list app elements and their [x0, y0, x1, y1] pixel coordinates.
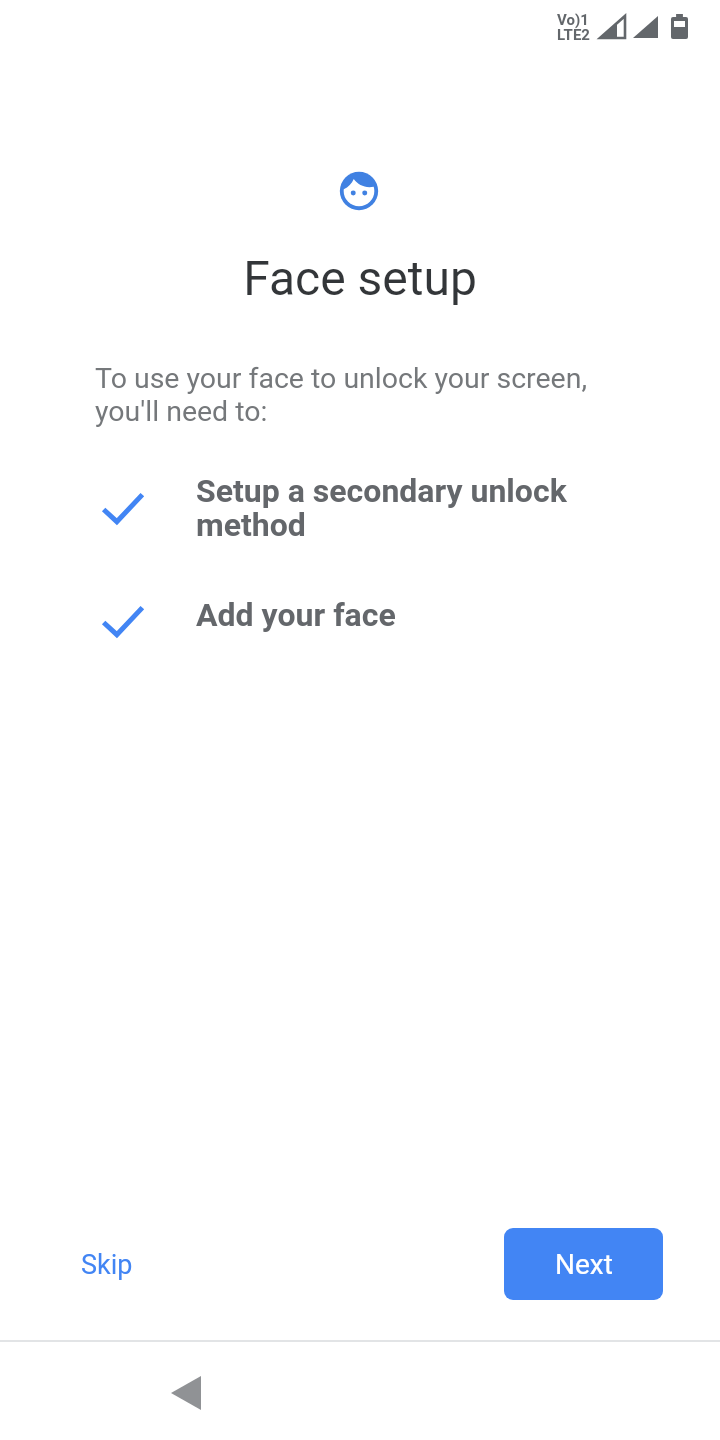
staticText: Setup a secondary unlock [196, 472, 567, 510]
staticText: To use your face to unlock your screen, [95, 362, 588, 395]
staticText: Skip [81, 1249, 133, 1281]
button[interactable] [171, 1376, 201, 1410]
button[interactable]: Skip [61, 1237, 153, 1293]
button[interactable]: Next [504, 1228, 663, 1300]
staticText: method [196, 506, 306, 544]
staticText: Vo)1 [557, 11, 589, 29]
staticText: Add your face [196, 596, 396, 634]
staticText: LTE2 [557, 26, 590, 44]
staticText: you'll need to: [95, 395, 268, 428]
staticText: Face setup [0, 250, 720, 306]
staticText: Next [555, 1248, 613, 1281]
